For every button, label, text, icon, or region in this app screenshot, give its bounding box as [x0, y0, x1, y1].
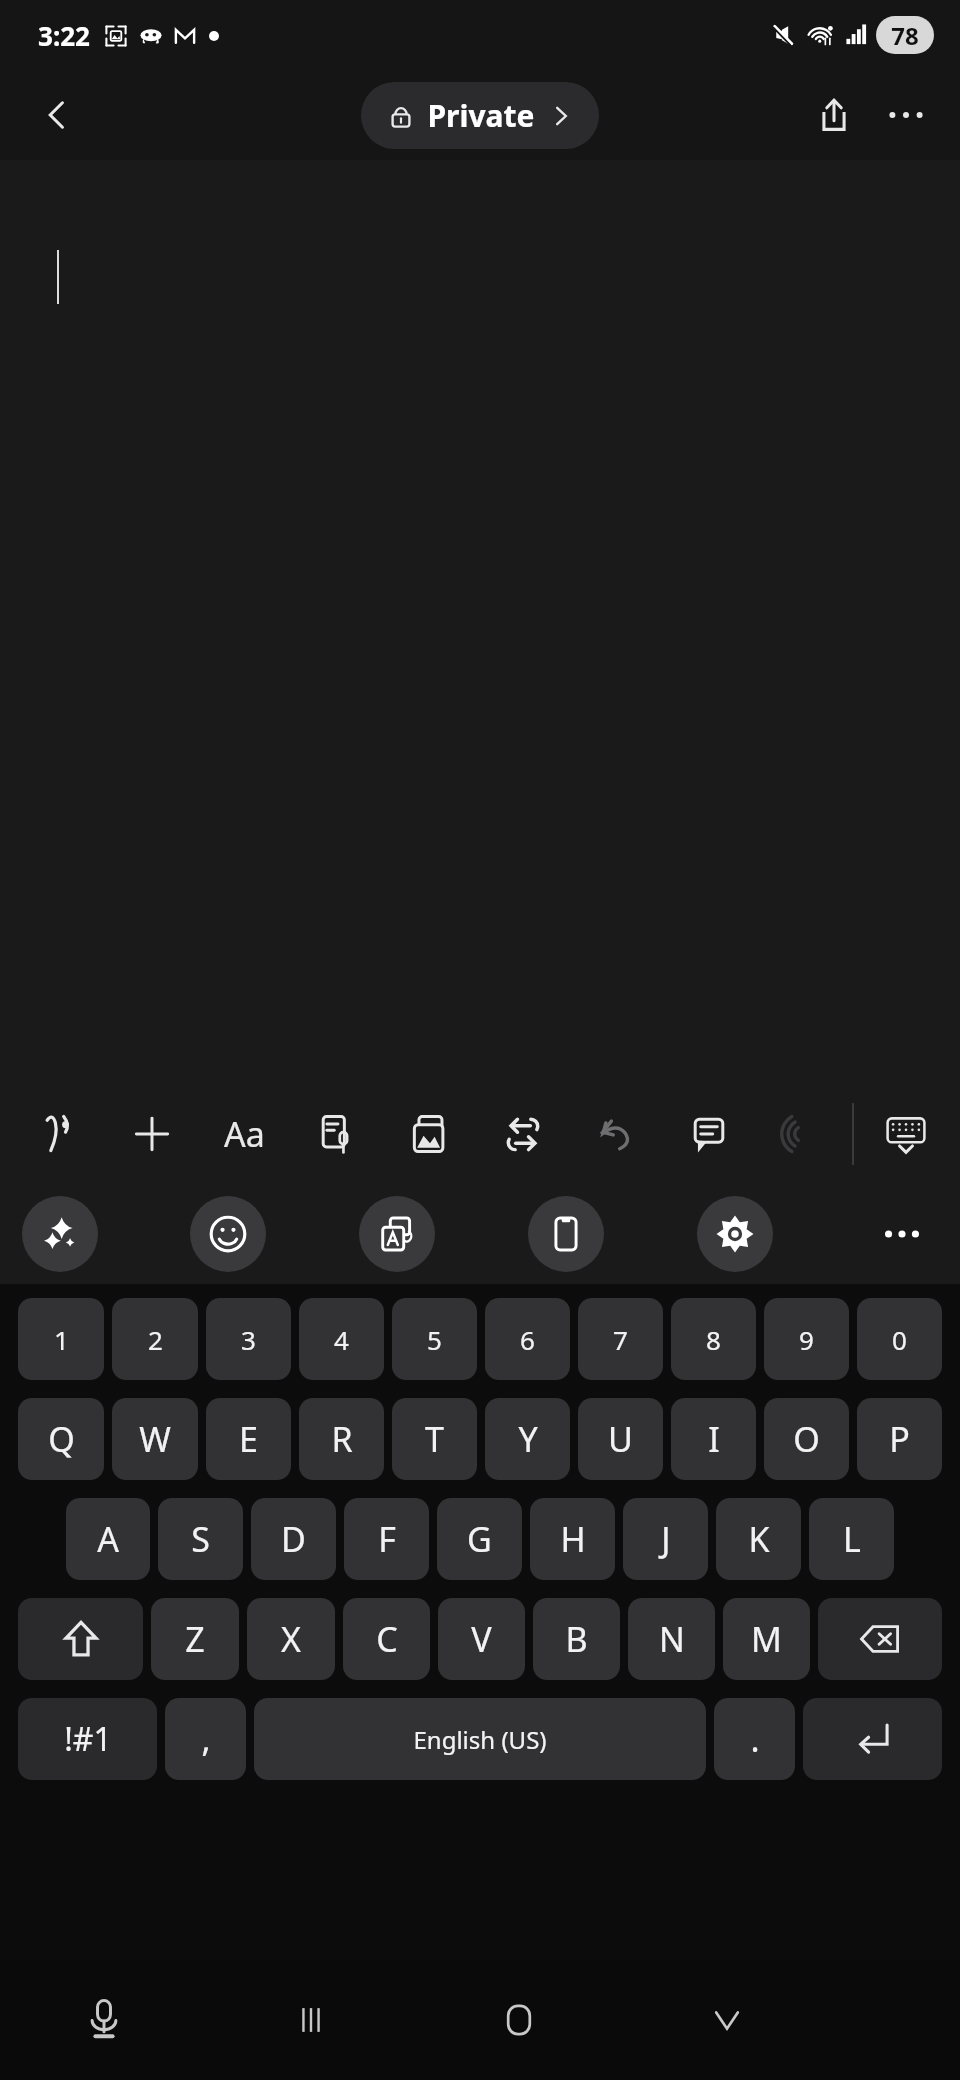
button[interactable]: Emoji — [190, 1196, 266, 1272]
button[interactable]: E — [206, 1398, 291, 1480]
button[interactable]: AI assist — [22, 1196, 98, 1272]
button[interactable]: I — [671, 1398, 756, 1480]
button[interactable]: Backspace — [818, 1598, 942, 1680]
staticText: 0 — [892, 1322, 907, 1357]
button[interactable]: Clipboard — [528, 1196, 604, 1272]
staticText: . — [750, 1716, 760, 1762]
staticText: 8 — [706, 1322, 721, 1357]
button[interactable]: Z — [151, 1598, 239, 1680]
button[interactable]: Back — [22, 80, 92, 150]
button[interactable]: X — [247, 1598, 335, 1680]
button[interactable]: Text format — [198, 1084, 290, 1184]
staticText: G — [467, 1516, 492, 1562]
staticText: B — [565, 1616, 588, 1662]
button[interactable]: 7 — [578, 1298, 663, 1380]
button[interactable]: A — [66, 1498, 150, 1580]
staticText: Z — [185, 1616, 205, 1662]
staticText: English (US) — [413, 1723, 547, 1756]
button[interactable]: S — [158, 1498, 243, 1580]
button[interactable]: Settings — [697, 1196, 773, 1272]
staticText: , — [201, 1716, 211, 1762]
button[interactable]: Private — [361, 82, 599, 149]
button[interactable]: Comment — [662, 1084, 755, 1184]
button[interactable]: Draw — [14, 1084, 106, 1184]
button[interactable]: L — [809, 1498, 894, 1580]
button[interactable]: H — [530, 1498, 615, 1580]
staticText: 2 — [148, 1322, 163, 1357]
button[interactable]: P — [857, 1398, 942, 1480]
button[interactable]: Home — [415, 1960, 623, 2080]
staticText: L — [843, 1516, 861, 1562]
staticText: Aa — [224, 1111, 265, 1157]
staticText: 7 — [613, 1322, 628, 1357]
button[interactable]: English (US) — [254, 1698, 706, 1780]
staticText: 78 — [891, 19, 919, 52]
button[interactable]: Voice input — [0, 1960, 207, 2080]
button[interactable]: C — [343, 1598, 430, 1680]
button[interactable]: M — [723, 1598, 810, 1680]
button[interactable]: J — [623, 1498, 708, 1580]
button[interactable]: B — [533, 1598, 620, 1680]
staticText: C — [376, 1616, 398, 1662]
button[interactable]: Share — [798, 79, 870, 151]
button[interactable]: 5 — [392, 1298, 477, 1380]
button[interactable]: Insert image — [383, 1084, 476, 1184]
staticText: 6 — [520, 1322, 535, 1357]
button[interactable]: Record — [755, 1084, 848, 1184]
button[interactable]: 1 — [18, 1298, 104, 1380]
staticText: E — [239, 1416, 258, 1462]
staticText: A — [97, 1516, 119, 1562]
staticText: W — [139, 1416, 171, 1462]
button[interactable]: W — [112, 1398, 198, 1480]
staticText: 4 — [334, 1322, 349, 1357]
button[interactable]: !#1 — [18, 1698, 157, 1780]
button[interactable]: Undo — [569, 1084, 662, 1184]
button[interactable]: V — [438, 1598, 525, 1680]
staticText: N — [659, 1616, 685, 1662]
staticText: I — [708, 1416, 720, 1462]
staticText: O — [793, 1416, 820, 1462]
button[interactable]: Y — [485, 1398, 570, 1480]
button[interactable]: 9 — [764, 1298, 849, 1380]
button[interactable]: D — [251, 1498, 336, 1580]
button[interactable]: 6 — [485, 1298, 570, 1380]
button[interactable]: U — [578, 1398, 663, 1480]
button[interactable]: F — [344, 1498, 429, 1580]
button[interactable]: 2 — [112, 1298, 198, 1380]
button[interactable]: N — [628, 1598, 715, 1680]
staticText: K — [748, 1516, 770, 1562]
button[interactable]: G — [437, 1498, 522, 1580]
button[interactable]: T — [392, 1398, 477, 1480]
button[interactable]: 0 — [857, 1298, 942, 1380]
button[interactable]: Shift — [18, 1598, 143, 1680]
button[interactable]: Q — [18, 1398, 104, 1480]
staticText: 5 — [427, 1322, 442, 1357]
button[interactable]: Recents — [207, 1960, 415, 2080]
button[interactable]: R — [299, 1398, 384, 1480]
staticText: 1 — [54, 1322, 69, 1357]
staticText: U — [608, 1416, 633, 1462]
button[interactable]: 8 — [671, 1298, 756, 1380]
button[interactable]: K — [716, 1498, 801, 1580]
button[interactable]: More — [866, 1198, 938, 1270]
staticText: R — [331, 1416, 353, 1462]
staticText: J — [661, 1516, 671, 1562]
button[interactable]: Translate — [359, 1196, 435, 1272]
button[interactable]: Hide keyboard — [868, 1096, 944, 1172]
button[interactable]: 3 — [206, 1298, 291, 1380]
button[interactable]: Enter — [803, 1698, 942, 1780]
button[interactable]: O — [764, 1398, 849, 1480]
button[interactable]: , — [165, 1698, 246, 1780]
staticText: P — [889, 1416, 910, 1462]
staticText: Private — [427, 95, 535, 136]
staticText: S — [191, 1516, 210, 1562]
staticText: X — [281, 1616, 301, 1662]
button[interactable]: Hide keyboard — [623, 1960, 831, 2080]
button[interactable]: . — [714, 1698, 795, 1780]
button[interactable]: Redo loop — [476, 1084, 569, 1184]
button[interactable]: Add — [106, 1084, 198, 1184]
staticText: H — [560, 1516, 586, 1562]
button[interactable]: Voice note — [290, 1084, 383, 1184]
button[interactable]: More options — [870, 79, 942, 151]
button[interactable]: 4 — [299, 1298, 384, 1380]
